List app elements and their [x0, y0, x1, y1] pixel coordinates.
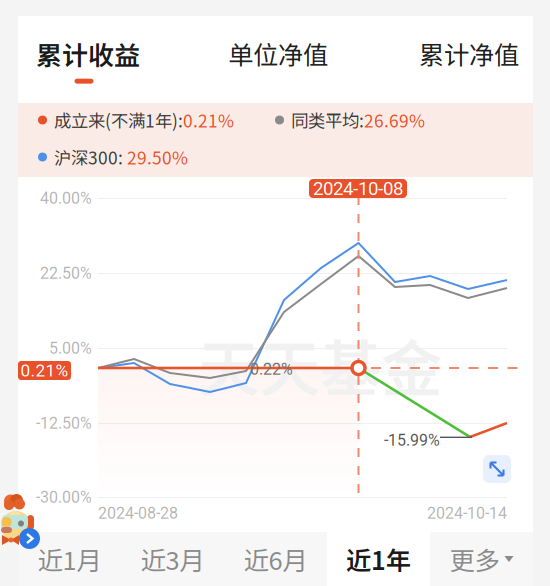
button[interactable]: 近3月	[121, 532, 224, 586]
staticText: 2024-08-28	[98, 504, 178, 523]
staticText: 累计收益	[36, 35, 140, 73]
button[interactable]: Open assistant	[19, 528, 40, 549]
staticText: 近6月	[243, 541, 307, 577]
button[interactable]: 单位净值	[222, 16, 334, 103]
staticText: 天天基金	[198, 320, 442, 409]
button[interactable]: 更多	[430, 532, 533, 586]
staticText: 沪深300:	[54, 144, 127, 170]
staticText: 0.22%	[250, 360, 293, 379]
staticText: 40.00%	[40, 189, 92, 208]
staticText: -15.99%	[384, 431, 440, 450]
staticText: 0.21%	[183, 107, 234, 133]
staticText: 26.69%	[364, 107, 425, 133]
button[interactable]: 累计收益	[32, 16, 144, 103]
staticText: 2024-10-08	[313, 178, 403, 199]
staticText: 近1月	[37, 541, 101, 577]
staticText: 2024-10-14	[427, 504, 507, 523]
staticText: 22.50%	[40, 264, 92, 283]
staticText: 更多	[449, 541, 499, 577]
staticText: -30.00%	[36, 488, 92, 507]
staticText: 近1年	[346, 541, 411, 577]
staticText: 0.21%	[20, 360, 68, 381]
staticText: 累计净值	[419, 35, 519, 72]
button[interactable]: 近6月	[224, 532, 327, 586]
button[interactable]: Fullscreen chart	[483, 455, 511, 483]
staticText: -12.50%	[36, 414, 92, 433]
staticText: 29.50%	[127, 144, 188, 170]
button[interactable]: 累计净值	[413, 16, 525, 103]
button[interactable]: 近1月	[18, 532, 121, 586]
button[interactable]: 近1年	[327, 532, 430, 586]
staticText: 同类平均:	[291, 107, 364, 133]
staticText: 5.00%	[49, 339, 92, 358]
staticText: 单位净值	[228, 35, 328, 72]
staticText: 成立来(不满1年):	[54, 107, 183, 133]
staticText: 近3月	[140, 541, 204, 577]
